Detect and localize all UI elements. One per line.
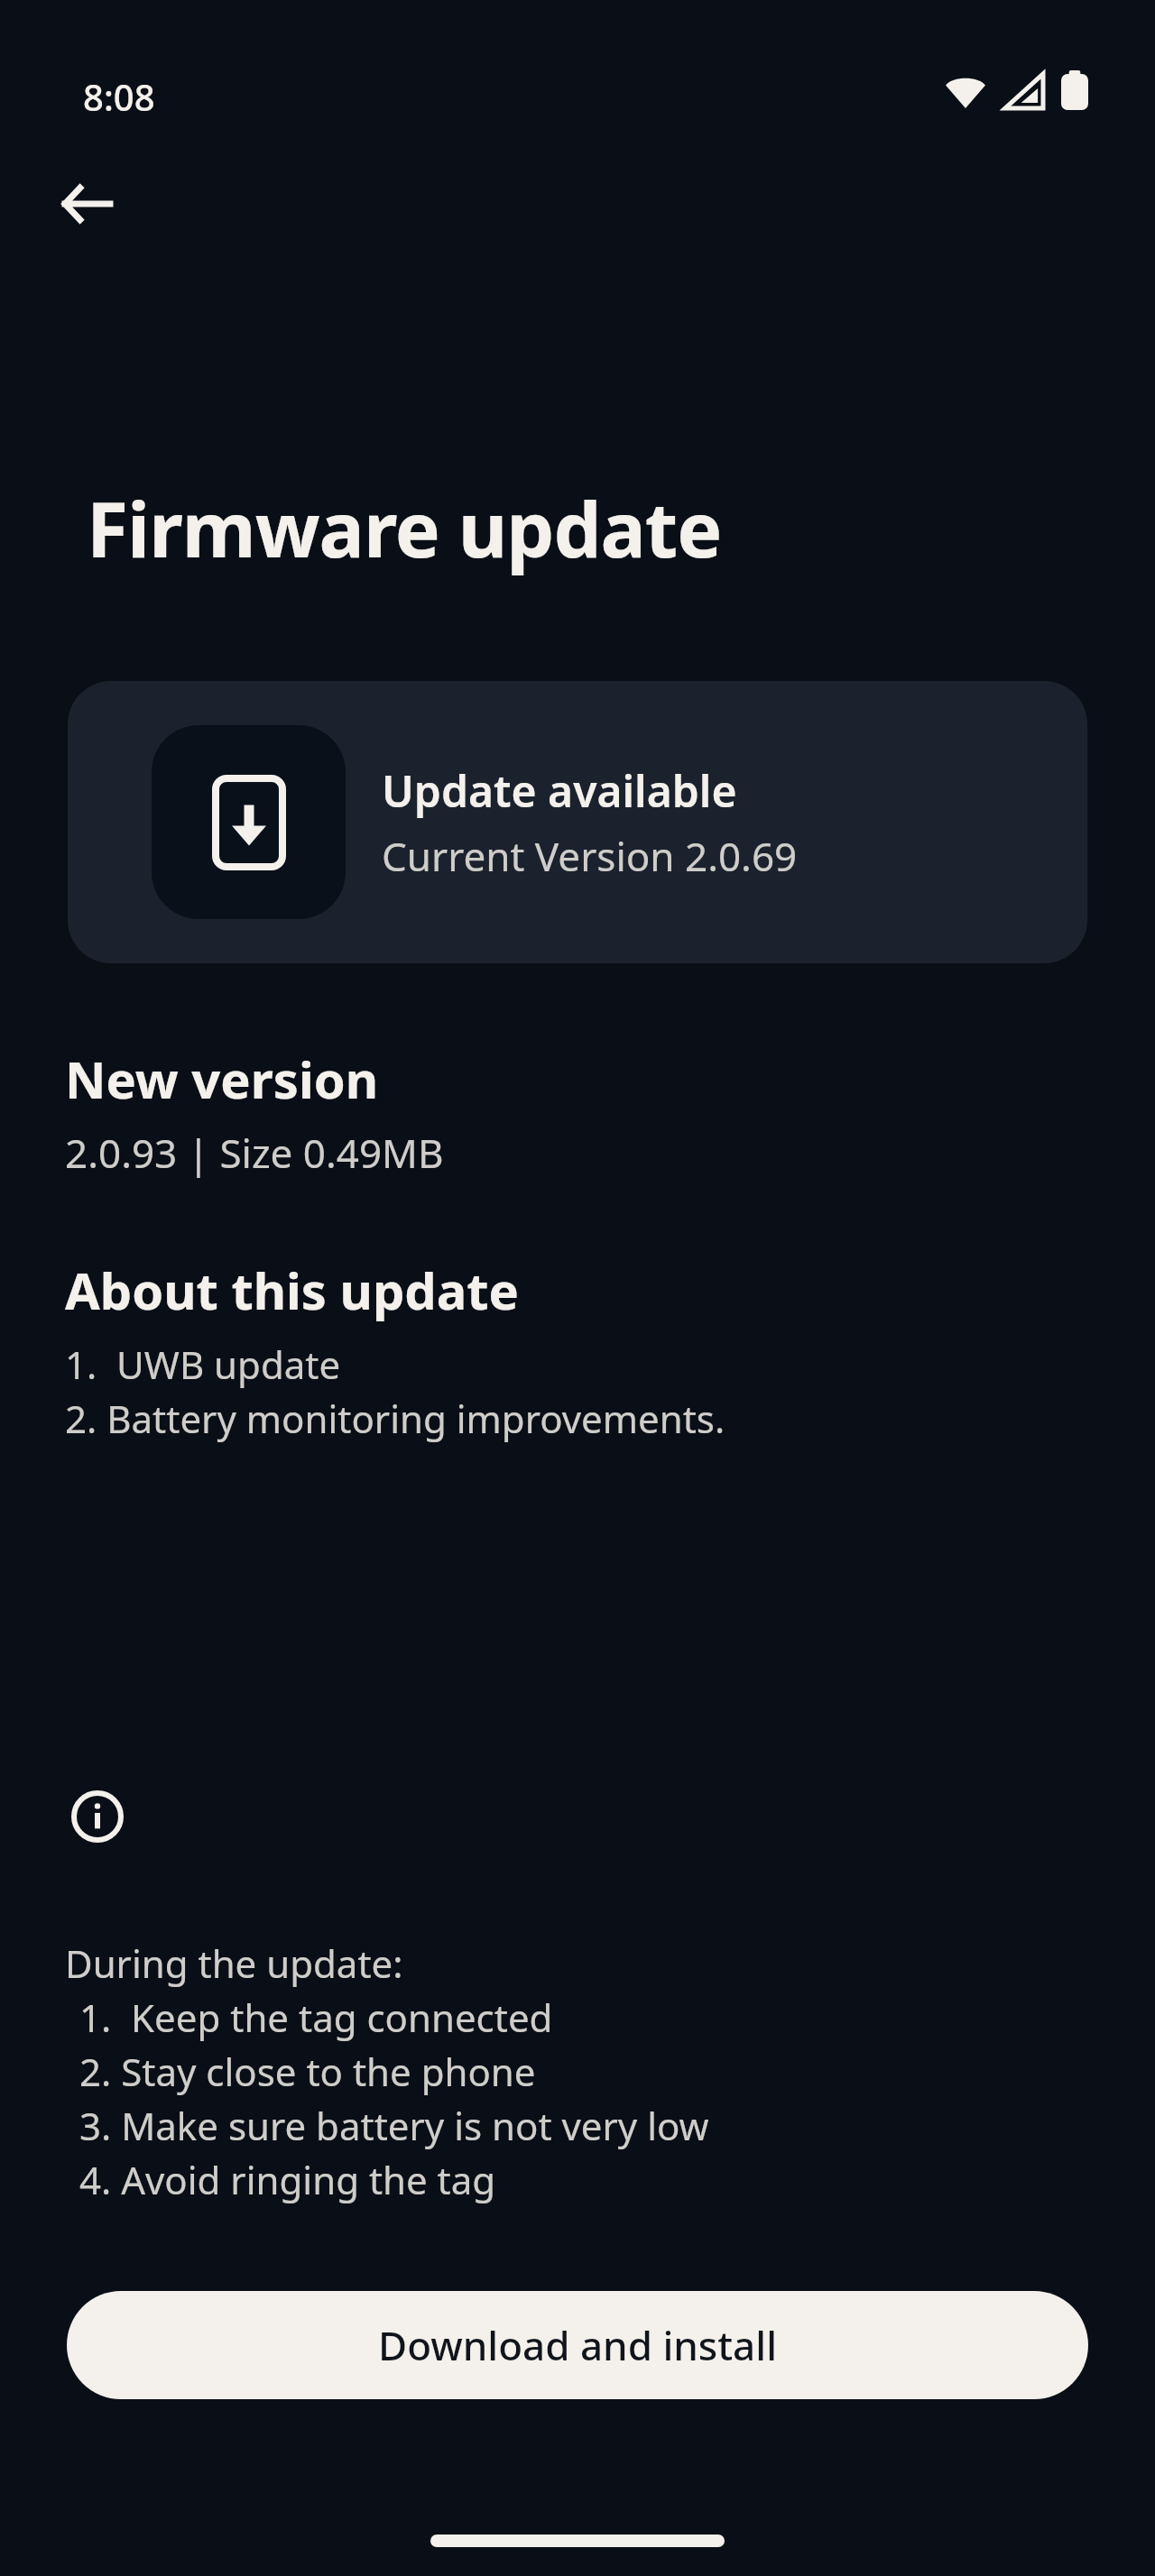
staticText: 1. Keep the tag connected	[79, 1992, 553, 2043]
staticText: Current Version 2.0.69	[382, 829, 798, 883]
staticText: 4. Avoid ringing the tag	[79, 2154, 496, 2205]
staticText: 8:08	[83, 72, 155, 121]
staticText: 2. Battery monitoring improvements.	[65, 1393, 725, 1444]
staticText: Download and install	[378, 2318, 778, 2372]
button[interactable]: Information	[65, 1784, 130, 1849]
staticText: 3. Make sure battery is not very low	[79, 2100, 709, 2151]
staticText: 2. Stay close to the phone	[79, 2046, 536, 2097]
staticText: 1. UWB update	[65, 1339, 341, 1390]
staticText: 2.0.93 | Size 0.49MB	[65, 1126, 444, 1180]
staticText: Firmware update	[87, 476, 722, 579]
staticText: About this update	[65, 1256, 519, 1324]
button[interactable]: Back	[43, 161, 130, 247]
staticText: Update available	[382, 761, 737, 820]
staticText: During the update:	[65, 1937, 403, 1989]
staticText: New version	[65, 1044, 379, 1113]
button[interactable]: Download and install	[67, 2291, 1088, 2399]
button[interactable]: Update available	[68, 681, 1087, 963]
